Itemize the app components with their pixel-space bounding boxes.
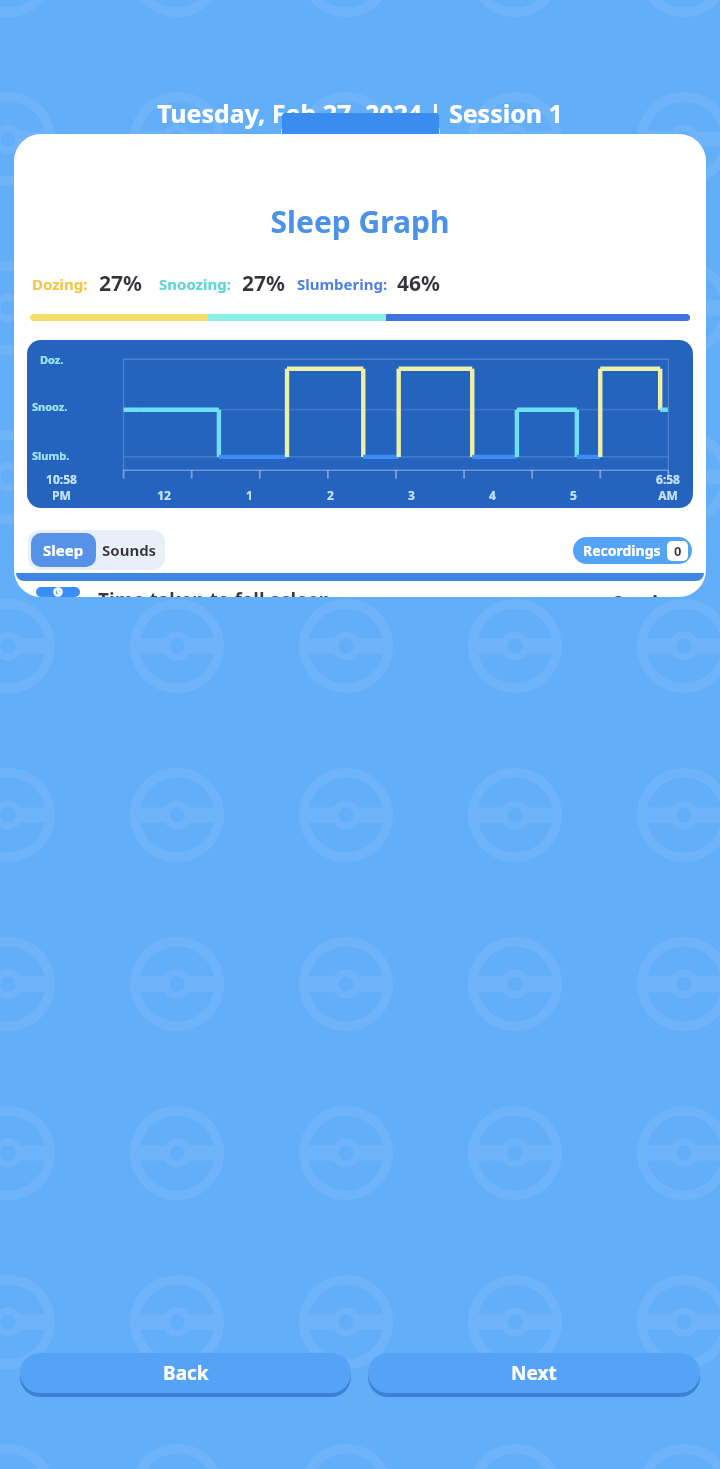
staticText: 0 bbox=[674, 542, 682, 560]
staticText: 27% bbox=[99, 269, 142, 298]
staticText: Doz. bbox=[40, 352, 64, 367]
other: Clock bbox=[36, 587, 80, 597]
staticText: Slumb. bbox=[32, 448, 70, 463]
staticText: Tuesday, Feb 27, 2024 | Session 1 bbox=[0, 96, 720, 130]
staticText: 10:58 bbox=[46, 471, 77, 487]
button[interactable]: Next bbox=[368, 1353, 700, 1393]
staticText: Sleep bbox=[43, 540, 84, 560]
button[interactable]: Sleep bbox=[31, 533, 96, 567]
staticText: 12 bbox=[157, 487, 171, 503]
button[interactable]: Recordings bbox=[573, 537, 692, 564]
button[interactable]: Sounds bbox=[96, 533, 162, 567]
staticText: 27% bbox=[242, 269, 285, 298]
staticText: Dozing: bbox=[32, 274, 88, 294]
staticText: 1 bbox=[246, 487, 253, 503]
staticText: 3 bbox=[408, 487, 415, 503]
staticText: Next bbox=[511, 1360, 557, 1386]
staticText: 46% bbox=[397, 269, 440, 298]
staticText: 5 bbox=[570, 487, 577, 503]
staticText: 2 bbox=[327, 487, 334, 503]
staticText: 2 mins bbox=[612, 587, 684, 597]
button[interactable]: Clock bbox=[14, 587, 706, 597]
staticText: AM bbox=[658, 487, 678, 503]
staticText: 6:58 bbox=[656, 471, 680, 487]
staticText: Recordings bbox=[583, 541, 661, 560]
staticText: PM bbox=[52, 487, 71, 503]
staticText: 4 bbox=[489, 487, 496, 503]
staticText: Back bbox=[163, 1360, 209, 1386]
staticText: Snooz. bbox=[32, 399, 68, 414]
staticText: Time taken to fall asleep bbox=[98, 587, 331, 597]
staticText: Sounds bbox=[102, 540, 157, 560]
staticText: Snoozing: bbox=[159, 274, 231, 294]
button[interactable]: Back bbox=[20, 1353, 351, 1393]
staticText: Sleep Graph bbox=[14, 201, 706, 242]
staticText: Slumbering: bbox=[297, 274, 388, 294]
